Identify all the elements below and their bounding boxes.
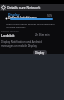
staticText: Display Notification and Android [1,40,42,44]
staticText: Details sure Network [7,5,41,10]
button[interactable]: Display [33,50,47,55]
staticText: 2h 36m min [35,33,50,37]
staticText: 50% [47,14,53,18]
staticText: Display [35,51,45,55]
staticText: Default brightness [8,15,37,19]
staticText: Display settings [1,29,19,32]
staticText: Lockbit [1,33,15,38]
staticText: Learn more about Display and brightness [6,22,55,25]
staticText: messages on mobile Display [1,44,37,48]
other: Settings [0,4,7,11]
staticText: Android settings [6,25,26,28]
button[interactable]: Settings [0,4,64,11]
staticText: Display [8,12,20,16]
